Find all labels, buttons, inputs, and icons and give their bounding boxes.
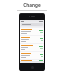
button[interactable] [20, 36, 44, 43]
button[interactable]: Home [31, 66, 34, 69]
button[interactable] [20, 44, 44, 51]
button[interactable]: Search [20, 22, 44, 27]
button[interactable] [20, 60, 44, 61]
button[interactable] [20, 28, 44, 35]
staticText: Change [23, 2, 41, 8]
button[interactable] [20, 52, 44, 59]
